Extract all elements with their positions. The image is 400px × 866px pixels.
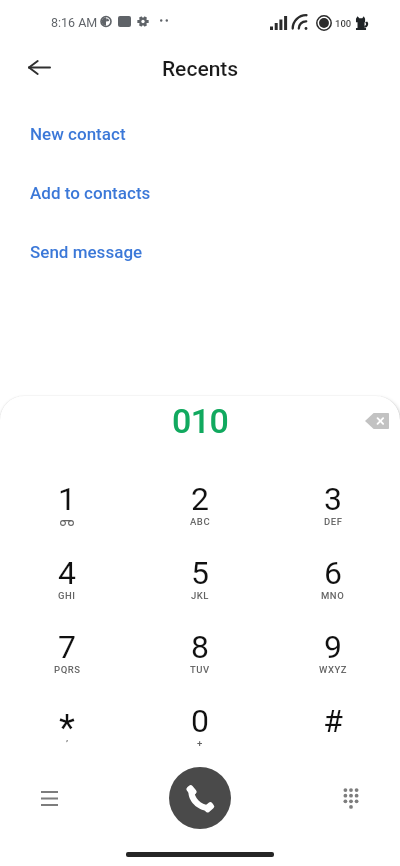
staticText: 010 [172,401,229,441]
button[interactable]: 4 [31,541,103,611]
button[interactable]: 3 [297,467,369,537]
button[interactable]: Add to contacts [0,179,400,207]
staticText: * [59,706,75,749]
staticText: 0 [191,702,209,740]
button[interactable]: 1 [31,467,103,537]
button[interactable]: Backspace [356,400,398,442]
button[interactable]: 7 [31,615,103,685]
staticText: # [323,702,343,740]
staticText: MNO [321,590,345,601]
staticText: 1 [58,480,76,518]
button[interactable]: Back [19,47,59,87]
staticText: Recents [162,57,239,82]
button[interactable]: 0 [164,689,236,759]
staticText: 5 [191,554,209,592]
staticText: 100 [335,18,352,29]
staticText: 7 [58,628,76,666]
button[interactable]: 8 [164,615,236,685]
staticText: 3 [324,480,342,518]
button[interactable]: 5 [164,541,236,611]
staticText: ’ [66,738,69,749]
button[interactable]: 2 [164,467,236,537]
staticText: WXYZ [319,664,348,675]
button[interactable]: Dialpad [327,772,375,820]
button[interactable]: 6 [297,541,369,611]
button[interactable]: # [297,689,369,759]
staticText: GHI [58,590,76,601]
staticText: 6 [324,554,342,592]
staticText: 4 [58,554,76,592]
button[interactable]: More options [25,774,73,822]
staticText: 2 [191,480,209,518]
button[interactable]: 9 [297,615,369,685]
staticText: PQRS [54,664,81,675]
staticText: 9 [324,628,342,666]
button[interactable]: Call [169,767,231,829]
staticText: TUV [190,664,210,675]
staticText: ABC [190,516,211,527]
button[interactable]: New contact [0,120,400,148]
staticText: New contact [30,124,126,144]
button[interactable]: Send message [0,238,400,266]
staticText: DEF [324,516,343,527]
staticText: Send message [30,242,143,262]
staticText: 8 [191,628,209,666]
button[interactable]: * [31,689,103,759]
staticText: JKL [191,590,210,601]
staticText: Add to contacts [30,183,151,203]
staticText: 8:16 AM [51,15,98,30]
staticText: + [197,738,203,749]
